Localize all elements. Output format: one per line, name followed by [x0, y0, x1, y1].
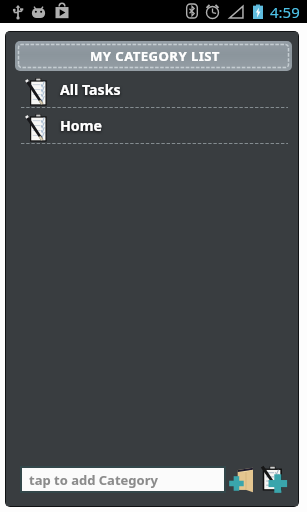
staticText: tap to add Category	[29, 471, 158, 489]
staticText: 4:59	[270, 2, 300, 22]
button[interactable]: tap to add Category	[22, 468, 224, 491]
staticText: MY CATEGORY LIST	[90, 47, 220, 65]
button[interactable]: All Tasks	[6, 72, 298, 107]
button[interactable]: Add task	[261, 465, 290, 494]
button[interactable]: Home	[6, 108, 298, 143]
button[interactable]: Add category folder	[230, 465, 258, 493]
button[interactable]: MY CATEGORY LIST	[15, 41, 292, 71]
staticText: All Tasks	[60, 80, 121, 99]
staticText: Home	[60, 116, 103, 135]
